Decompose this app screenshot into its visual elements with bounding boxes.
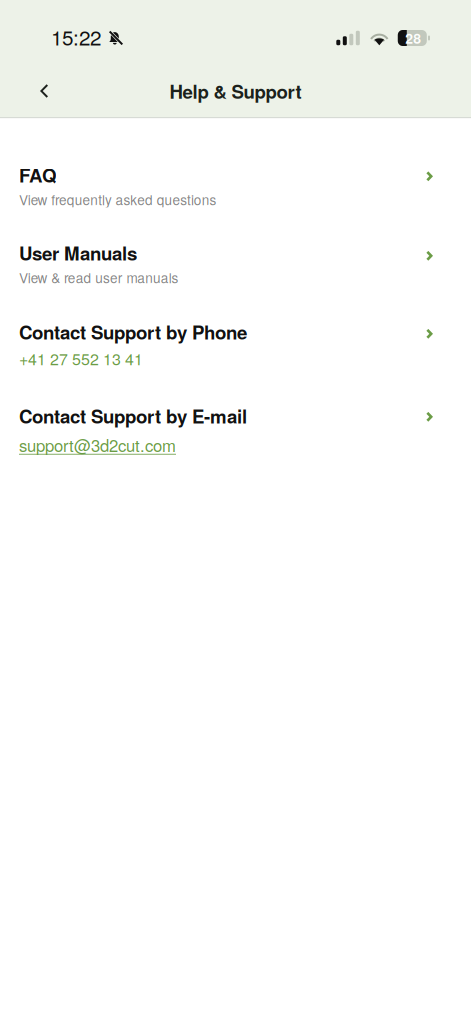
staticText: View frequently asked questions bbox=[19, 190, 216, 209]
staticText: Contact Support by E-mail bbox=[19, 402, 247, 429]
staticText: +41 27 552 13 41 bbox=[19, 347, 143, 370]
button[interactable]: Back bbox=[22, 69, 66, 113]
staticText: Help & Support bbox=[169, 78, 301, 104]
staticText: 15:22 bbox=[51, 22, 101, 51]
staticText: 28 bbox=[405, 28, 421, 48]
staticText: support@3d2cut.com bbox=[19, 433, 176, 457]
button[interactable]: Contact Support by Phone bbox=[0, 285, 471, 366]
button[interactable]: FAQ bbox=[0, 118, 471, 207]
staticText: Contact Support by Phone bbox=[19, 318, 247, 345]
button[interactable]: Contact Support by E-mail bbox=[0, 366, 471, 453]
button[interactable]: User Manuals bbox=[0, 207, 471, 285]
staticText: User Manuals bbox=[19, 239, 137, 266]
staticText: FAQ bbox=[19, 161, 57, 188]
staticText: View & read user manuals bbox=[19, 268, 178, 287]
